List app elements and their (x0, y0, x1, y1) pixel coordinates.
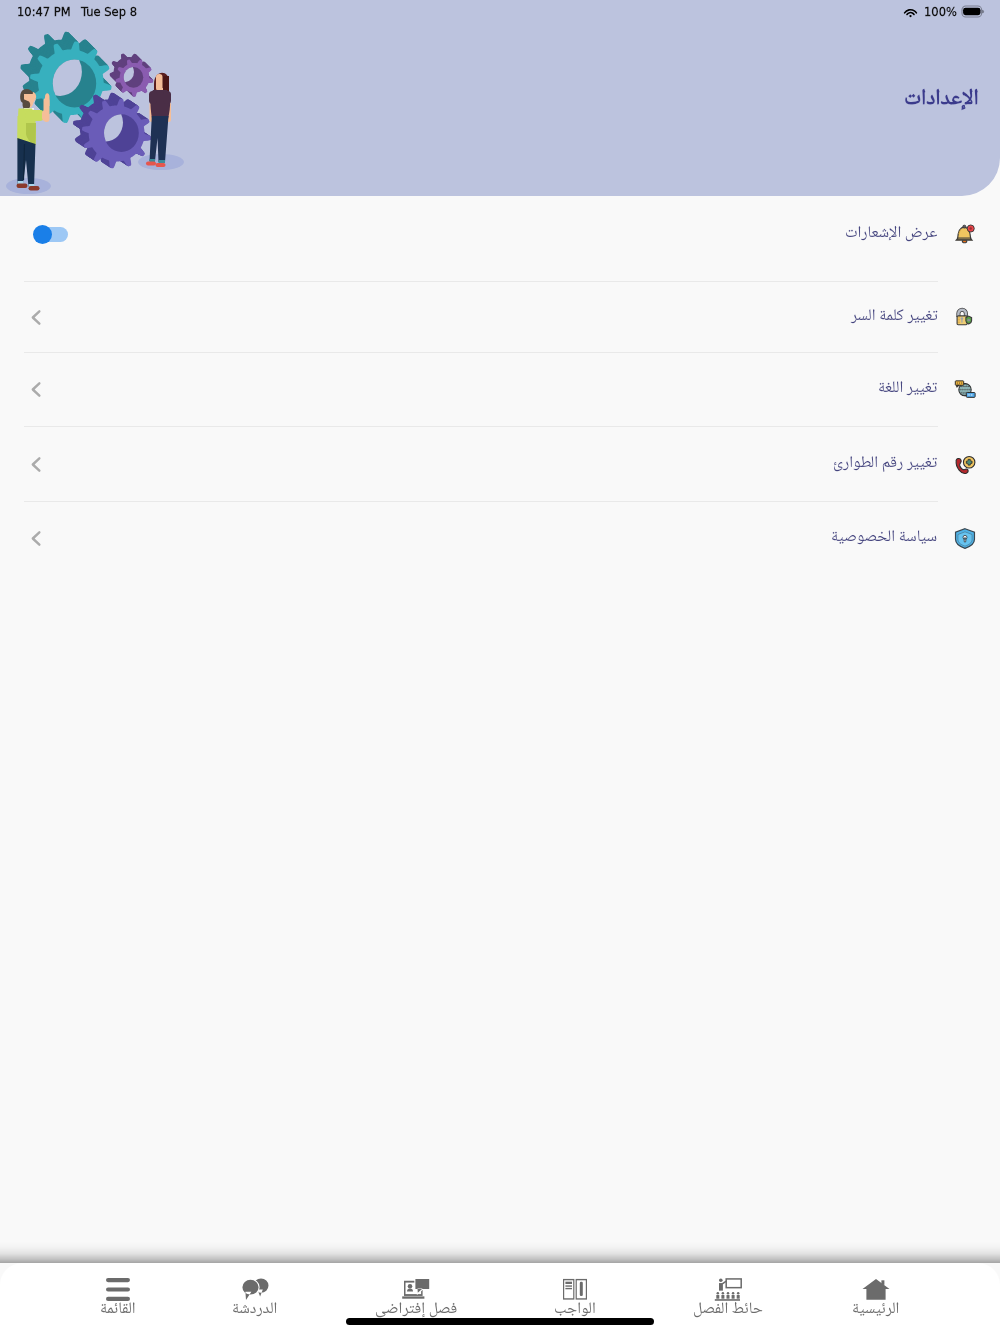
button[interactable]: حائط الفصل (668, 1272, 788, 1322)
staticText: تغيير كلمة السر (851, 303, 938, 331)
other: Open تغيير اللغة (29, 379, 42, 399)
staticText: 10:47 PM (17, 5, 71, 18)
staticText: القائمة (100, 1296, 136, 1323)
staticText: عرض الإشعارات (845, 220, 938, 248)
staticText: تغيير رقم الطوارئ (833, 450, 938, 478)
staticText: سياسة الخصوصية (831, 524, 938, 552)
other: Open سياسة الخصوصية (29, 528, 42, 548)
button[interactable]: Open تغيير رقم الطوارئ (0, 426, 1000, 501)
staticText: تغيير اللغة (878, 375, 938, 403)
staticText: الإعدادات (904, 80, 979, 117)
button[interactable]: Open تغيير كلمة السر (0, 281, 1000, 352)
staticText: 100% (924, 5, 957, 18)
staticText: الواجب (554, 1296, 596, 1323)
button[interactable]: القائمة (58, 1272, 178, 1322)
button[interactable]: الرئيسية (816, 1272, 936, 1322)
button[interactable]: Toggle notifications (0, 196, 1000, 272)
button[interactable]: فصل إفتراضي (356, 1272, 476, 1322)
button[interactable]: الواجب (515, 1272, 635, 1322)
staticText: الدردشة (232, 1296, 278, 1323)
staticText: فصل إفتراضي (375, 1296, 458, 1323)
button[interactable]: Open تغيير اللغة (0, 352, 1000, 426)
button[interactable]: Open سياسة الخصوصية (0, 501, 1000, 575)
button[interactable]: الدردشة (195, 1272, 315, 1322)
staticText: Tue Sep 8 (81, 5, 137, 18)
staticText: الرئيسية (852, 1296, 900, 1323)
other: Open تغيير كلمة السر (29, 307, 42, 327)
button[interactable]: Toggle notifications (33, 221, 79, 247)
other: Open تغيير رقم الطوارئ (29, 454, 42, 474)
staticText: حائط الفصل (693, 1296, 763, 1323)
